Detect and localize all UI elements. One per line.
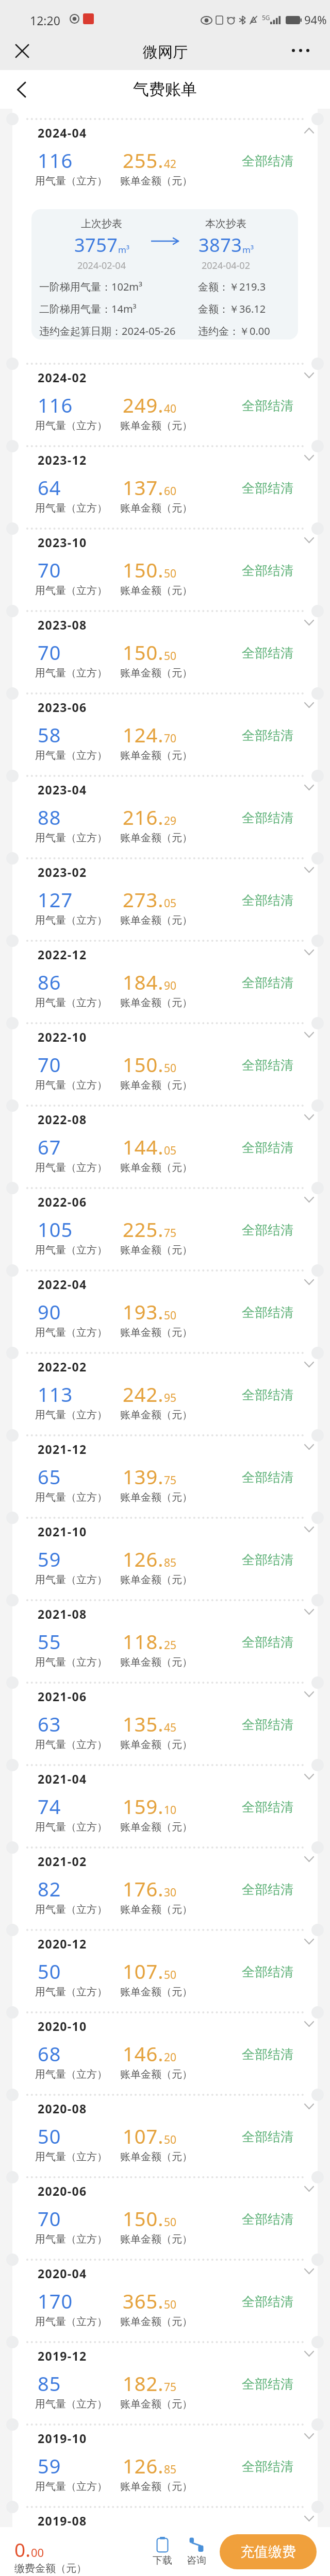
button[interactable]: 2020-12 bbox=[12, 1923, 318, 2006]
button[interactable]: 2022-10 bbox=[12, 1016, 318, 1099]
button[interactable]: Expand bbox=[292, 1436, 325, 1458]
button[interactable]: Close bbox=[16, 45, 28, 57]
button[interactable]: 2020-08 bbox=[12, 2088, 318, 2171]
button[interactable]: 2023-06 bbox=[12, 687, 318, 769]
staticText: 50 bbox=[164, 2215, 177, 2230]
staticText: 账单金额（元） bbox=[120, 1656, 192, 1669]
button[interactable]: 2022-06 bbox=[12, 1181, 318, 1264]
staticText: 账单金额（元） bbox=[120, 914, 192, 927]
staticText: 全部结清 bbox=[242, 727, 293, 743]
button[interactable]: 充值缴费 bbox=[220, 2534, 317, 2569]
button[interactable]: Expand bbox=[292, 1106, 325, 1128]
button[interactable]: 2023-08 bbox=[12, 604, 318, 687]
button[interactable]: 2019-12 bbox=[12, 2335, 318, 2418]
button[interactable]: Expand bbox=[292, 2260, 325, 2282]
staticText: 全部结清 bbox=[242, 2376, 293, 2392]
staticText: 用气量（立方） bbox=[35, 2150, 107, 2163]
button[interactable]: Expand bbox=[292, 859, 325, 880]
staticText: 账单金额（元） bbox=[120, 2068, 192, 2081]
staticText: 2019-10 bbox=[38, 2430, 87, 2446]
button[interactable]: Expand bbox=[292, 529, 325, 551]
button[interactable]: 2020-06 bbox=[12, 2171, 318, 2253]
button[interactable]: 下载 bbox=[145, 2537, 179, 2567]
button[interactable]: Expand bbox=[292, 364, 325, 386]
staticText: 146. bbox=[123, 2040, 164, 2067]
button[interactable]: 2021-12 bbox=[12, 1429, 318, 1511]
button[interactable]: 2021-04 bbox=[12, 1758, 318, 1841]
button[interactable]: 2023-02 bbox=[12, 852, 318, 934]
button[interactable]: Expand bbox=[292, 2425, 325, 2447]
staticText: 用气量（立方） bbox=[35, 1986, 107, 1998]
button[interactable]: Expand bbox=[292, 776, 325, 798]
button[interactable]: 2023-04 bbox=[12, 769, 318, 852]
staticText: 全部结清 bbox=[242, 1717, 293, 1733]
staticText: 全部结清 bbox=[242, 2541, 293, 2557]
button[interactable]: 2024-02 bbox=[12, 357, 318, 439]
button[interactable]: 2021-02 bbox=[12, 1841, 318, 1923]
staticText: 用气量（立方） bbox=[35, 584, 107, 597]
button[interactable]: 2021-10 bbox=[12, 1511, 318, 1594]
button[interactable]: Expand bbox=[292, 1353, 325, 1375]
staticText: 账单金额（元） bbox=[120, 1738, 192, 1751]
staticText: 账单金额（元） bbox=[120, 832, 192, 844]
button[interactable]: 2023-10 bbox=[12, 522, 318, 604]
button[interactable]: 2020-10 bbox=[12, 2006, 318, 2088]
staticText: 2021-10 bbox=[38, 1523, 87, 1539]
staticText: 用气量（立方） bbox=[35, 1656, 107, 1669]
staticText: 94% bbox=[304, 12, 327, 27]
staticText: 2022-08 bbox=[38, 1111, 87, 1127]
button[interactable]: Expand bbox=[292, 1601, 325, 1622]
staticText: 本次抄表 bbox=[205, 217, 246, 230]
staticText: 用气量（立方） bbox=[35, 749, 107, 762]
button[interactable]: Expand bbox=[292, 1930, 325, 1952]
button[interactable]: 2024-04 bbox=[12, 112, 318, 357]
button[interactable]: Back bbox=[17, 82, 25, 97]
button[interactable]: Expand bbox=[292, 612, 325, 633]
button[interactable]: Expand bbox=[292, 1024, 325, 1045]
button[interactable]: Expand bbox=[292, 1518, 325, 1540]
button[interactable]: Expand bbox=[292, 941, 325, 963]
staticText: 2021-02 bbox=[38, 1853, 87, 1869]
staticText: 2020-08 bbox=[38, 2100, 87, 2116]
button[interactable]: 2019-10 bbox=[12, 2418, 318, 2500]
button[interactable]: 2022-04 bbox=[12, 1264, 318, 1346]
staticText: 150. bbox=[123, 2205, 164, 2232]
button[interactable]: 2022-02 bbox=[12, 1346, 318, 1429]
staticText: 账单金额（元） bbox=[120, 2150, 192, 2163]
button[interactable]: 2023-12 bbox=[12, 439, 318, 522]
staticText: 2019-08 bbox=[38, 2513, 87, 2529]
staticText: 50 bbox=[164, 649, 177, 664]
button[interactable]: Expand bbox=[292, 2507, 325, 2529]
button[interactable]: 咨询 bbox=[179, 2537, 213, 2567]
staticText: 用气量（立方） bbox=[35, 1409, 107, 1421]
staticText: 用气量（立方） bbox=[35, 419, 107, 432]
staticText: 116 bbox=[38, 147, 73, 174]
staticText: 193. bbox=[123, 1298, 164, 1325]
button[interactable]: 2021-06 bbox=[12, 1676, 318, 1758]
button[interactable]: Expand bbox=[292, 2013, 325, 2035]
button[interactable]: Expand bbox=[292, 2095, 325, 2117]
button[interactable]: More options bbox=[290, 49, 311, 52]
staticText: 90 bbox=[164, 978, 177, 993]
button[interactable]: 2019-08 bbox=[12, 2500, 318, 2527]
staticText: 用气量（立方） bbox=[35, 1573, 107, 1586]
button[interactable]: Expand bbox=[292, 2343, 325, 2364]
button[interactable]: Expand bbox=[292, 447, 325, 468]
button[interactable]: Expand bbox=[292, 1271, 325, 1293]
button[interactable]: Expand bbox=[292, 1766, 325, 1787]
staticText: 25 bbox=[164, 1638, 177, 1653]
button[interactable]: 2020-04 bbox=[12, 2253, 318, 2335]
staticText: 50 bbox=[164, 1968, 177, 1982]
button[interactable]: Expand bbox=[292, 1189, 325, 1210]
staticText: 账单金额（元） bbox=[120, 419, 192, 432]
button[interactable]: Expand bbox=[292, 2178, 325, 2199]
button[interactable]: 2021-08 bbox=[12, 1594, 318, 1676]
button[interactable]: Expand bbox=[292, 1848, 325, 1870]
staticText: 75 bbox=[164, 2380, 177, 2395]
button[interactable]: 2022-08 bbox=[12, 1099, 318, 1181]
button[interactable]: Expand bbox=[292, 1683, 325, 1705]
button[interactable]: Expand bbox=[292, 694, 325, 716]
button[interactable]: Collapse bbox=[292, 120, 325, 141]
staticText: 2022-04 bbox=[38, 1276, 87, 1292]
button[interactable]: 2022-12 bbox=[12, 934, 318, 1016]
